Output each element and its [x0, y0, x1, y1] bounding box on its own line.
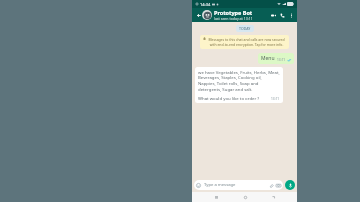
staticText: Prototype Bot — [214, 9, 253, 16]
button[interactable]: Back — [194, 11, 202, 19]
button[interactable]: Send voice message — [285, 180, 295, 190]
button[interactable]: Attach — [268, 182, 274, 188]
button[interactable]: Call — [278, 11, 287, 20]
button[interactable]: Video call — [269, 11, 278, 20]
button[interactable]: Menu — [258, 53, 294, 64]
button[interactable]: More options — [287, 11, 295, 19]
staticText: last seen today at 13:11 — [214, 16, 253, 21]
staticText: Menu — [261, 55, 275, 62]
button[interactable]: Messages to this chat and calls are now … — [200, 35, 289, 49]
staticText: 13:11 — [277, 58, 286, 62]
button[interactable]: Back — [269, 193, 277, 201]
staticText: Messages to this chat and calls are now … — [207, 37, 286, 47]
button[interactable]: Home — [241, 193, 249, 201]
button[interactable]: Type a message — [194, 180, 283, 190]
staticText: What would you like to order ? — [198, 95, 260, 101]
button[interactable]: Recents — [212, 193, 220, 201]
button[interactable]: Prototype Bot — [202, 8, 269, 22]
button[interactable]: Camera — [275, 182, 281, 188]
staticText: Type a message — [204, 182, 236, 188]
staticText: 14:34 — [200, 2, 211, 7]
staticText: we have Vegetables, Fruits, Herbs, Meat,… — [198, 69, 280, 93]
staticText: TODAY — [239, 26, 251, 31]
staticText: 13:11 — [271, 97, 280, 101]
button[interactable]: we have Vegetables, Fruits, Herbs, Meat,… — [195, 67, 283, 103]
